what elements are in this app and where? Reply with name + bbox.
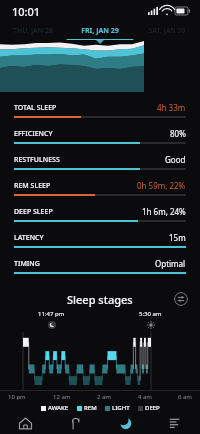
button[interactable]: Home — [0, 416, 50, 434]
staticText: TOTAL SLEEP — [14, 103, 57, 113]
staticText: LIGHT — [112, 404, 130, 412]
staticText: 80% — [170, 128, 186, 139]
staticText: DEEP SLEEP — [14, 207, 53, 217]
button[interactable]: LATENCY — [14, 226, 186, 252]
staticText: FRI, JAN 29 — [81, 26, 119, 36]
button[interactable]: Adjust sleep stages — [174, 292, 188, 306]
staticText: 6 am — [178, 393, 192, 401]
button[interactable]: Activity — [150, 416, 200, 434]
button[interactable]: FRI, JAN 29 — [66, 22, 133, 40]
button[interactable]: Readiness — [50, 416, 100, 434]
staticText: 4h 33m — [157, 102, 186, 113]
button[interactable]: RESTFULNESS — [14, 148, 186, 174]
staticText: REM — [84, 404, 97, 412]
staticText: LATENCY — [14, 233, 44, 243]
staticText: Optimal — [155, 258, 186, 269]
staticText: REM SLEEP — [14, 181, 51, 191]
staticText: 10 pm — [8, 393, 26, 401]
staticText: 5:30 am — [139, 310, 162, 318]
staticText: 15m — [169, 232, 186, 243]
staticText: DEEP — [145, 404, 160, 412]
staticText: Good — [165, 154, 186, 165]
staticText: RESTFULNESS — [14, 155, 60, 165]
staticText: THU, JAN 28 — [13, 26, 53, 36]
staticText: AWAKE — [48, 404, 69, 412]
button[interactable]: TOTAL SLEEP — [14, 96, 186, 122]
staticText: EFFICIENCY — [14, 129, 53, 139]
staticText: 4 am — [138, 393, 152, 401]
staticText: Sleep stages — [67, 292, 133, 307]
button[interactable]: REM SLEEP — [14, 174, 186, 200]
button[interactable]: SAT, JAN 30 — [133, 22, 200, 40]
staticText: TIMING — [14, 259, 40, 269]
staticText: 1h 6m, 24% — [142, 206, 186, 217]
button[interactable]: Sleep — [100, 416, 150, 434]
button[interactable]: DEEP SLEEP — [14, 200, 186, 226]
button[interactable]: THU, JAN 28 — [0, 22, 66, 40]
staticText: 10:01 — [12, 4, 41, 19]
staticText: 0h 59m, 22% — [137, 180, 186, 191]
staticText: SAT, JAN 30 — [148, 26, 186, 36]
staticText: 12 am — [53, 393, 71, 401]
button[interactable]: TIMING — [14, 252, 186, 278]
staticText: 11:47 pm — [38, 310, 65, 318]
button[interactable]: EFFICIENCY — [14, 122, 186, 148]
staticText: 2 am — [97, 393, 111, 401]
